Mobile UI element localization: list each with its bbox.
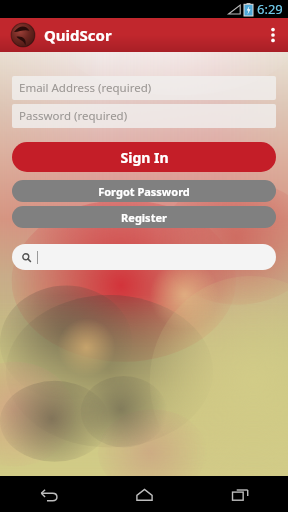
button[interactable]: Back xyxy=(0,476,96,512)
staticText: 6:29 xyxy=(257,0,283,18)
staticText: Register xyxy=(121,210,167,225)
button[interactable]: Search xyxy=(12,244,276,270)
button[interactable]: Email Address (required) xyxy=(12,76,276,100)
button[interactable]: Forgot Password xyxy=(12,180,276,202)
button[interactable]: Password (required) xyxy=(12,104,276,128)
button[interactable]: More options xyxy=(258,18,288,52)
button[interactable]: Register xyxy=(12,206,276,228)
staticText: Email Address (required) xyxy=(19,80,152,96)
staticText: QuidScor xyxy=(44,25,112,45)
button[interactable]: Recent apps xyxy=(192,476,288,512)
staticText: Forgot Password xyxy=(98,184,190,199)
button[interactable]: Home xyxy=(96,476,192,512)
button[interactable]: Sign In xyxy=(12,142,276,172)
staticText: Sign In xyxy=(120,148,169,167)
staticText: Password (required) xyxy=(19,108,128,124)
